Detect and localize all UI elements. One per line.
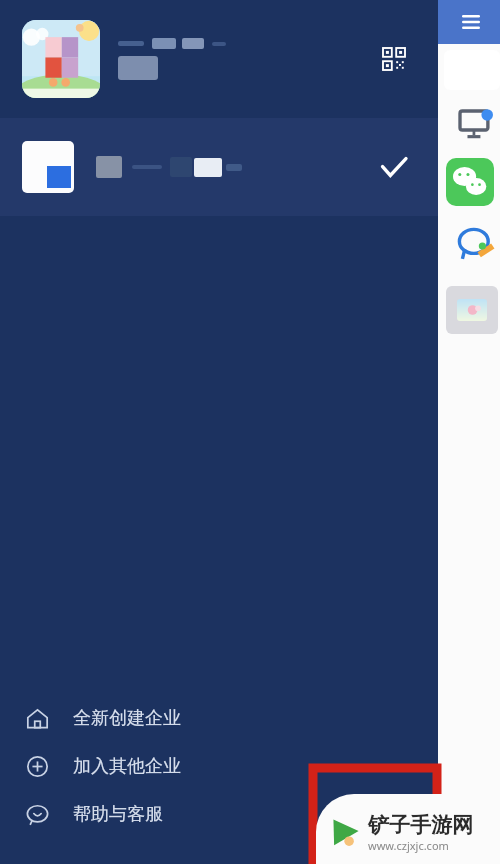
button[interactable]: Selected — [372, 145, 416, 189]
button[interactable]: Add — [468, 816, 500, 860]
button[interactable]: 加入其他企业 — [0, 742, 438, 790]
staticText: 铲子手游网 — [368, 812, 473, 838]
staticText: 加入其他企业 — [73, 755, 181, 778]
staticText: 全新创建企业 — [73, 707, 181, 730]
button[interactable]: Scan QR code — [372, 37, 416, 81]
staticText: 帮助与客服 — [73, 803, 163, 826]
button[interactable]: 帮助与客服 — [0, 790, 438, 838]
button[interactable]: Selected — [0, 118, 438, 216]
button[interactable]: Menu — [456, 7, 486, 37]
staticText: www.czjxjc.com — [368, 838, 449, 853]
button[interactable]: Scan QR code — [0, 0, 438, 118]
button[interactable]: 全新创建企业 — [0, 694, 438, 742]
